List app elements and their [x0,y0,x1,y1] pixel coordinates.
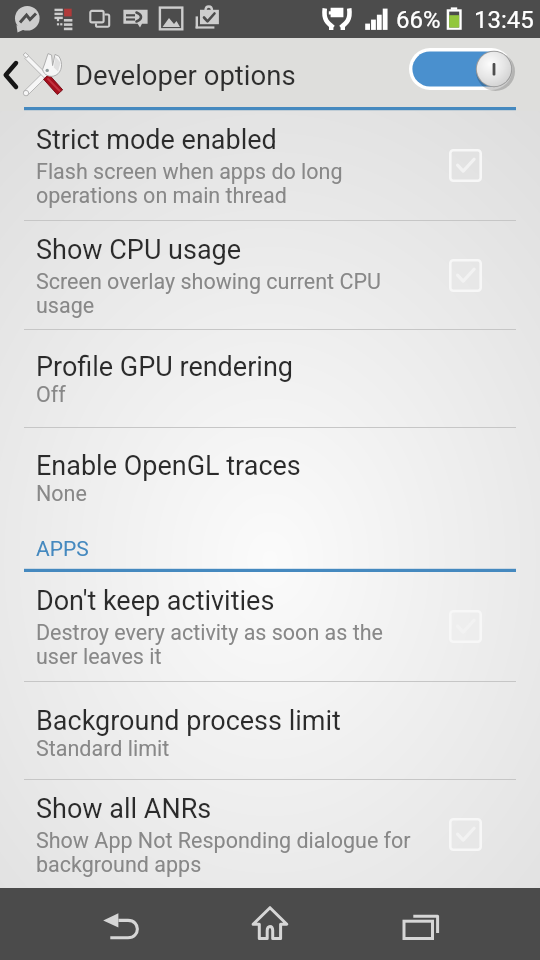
staticText: 13:45 [474,6,534,34]
staticText: Standard limit [36,736,170,761]
staticText: Background process limit [36,705,341,737]
staticText: Off [36,382,66,407]
button[interactable]: Home [243,888,297,960]
staticText: Enable OpenGL traces [36,450,301,482]
staticText: Screen overlay showing current CPU usage [36,269,381,318]
staticText: Don't keep activities [36,585,275,617]
staticText: Destroy every activity as soon as the us… [36,620,383,669]
button[interactable]: Back to Settings [0,38,300,111]
staticText: None [36,481,87,506]
staticText: Show all ANRs [36,793,212,825]
staticText: Flash screen when apps do long operation… [36,159,343,208]
button[interactable]: Show CPU usage [0,221,540,329]
button[interactable]: Developer options on [403,46,519,102]
staticText: Developer options [75,59,296,91]
button[interactable]: Strict mode enabled [0,111,540,220]
staticText: Show CPU usage [36,234,242,266]
button[interactable]: Enable OpenGL traces [0,428,540,525]
button[interactable]: Show all ANRs [0,780,540,888]
staticText: Show App Not Responding dialogue for bac… [36,828,411,877]
button[interactable]: Recent apps [396,888,452,960]
staticText: Strict mode enabled [36,124,277,156]
staticText: Profile GPU rendering [36,351,293,383]
button[interactable]: Back [90,888,150,960]
button[interactable]: Background process limit [0,682,540,779]
button[interactable]: Profile GPU rendering [0,330,540,427]
button[interactable]: Don't keep activities [0,572,540,681]
staticText: 66% [396,6,441,34]
staticText: APPS [36,537,89,562]
